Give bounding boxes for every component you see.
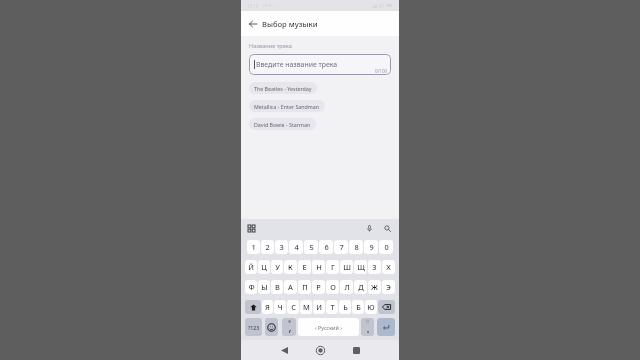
staticText: В xyxy=(275,282,280,292)
button[interactable]: Home xyxy=(312,342,329,359)
staticText: О xyxy=(330,282,336,292)
staticText: Э xyxy=(386,282,391,292)
button[interactable]: Э xyxy=(382,280,395,294)
button[interactable]: Я xyxy=(262,300,273,314)
button[interactable]: Recents xyxy=(348,342,365,359)
button[interactable]: Back xyxy=(276,342,293,359)
staticText: Р xyxy=(316,282,321,292)
staticText: 5 xyxy=(309,242,314,252)
staticText: Г xyxy=(331,262,335,272)
staticText: 0 xyxy=(384,242,389,252)
button[interactable]: 9 xyxy=(364,240,378,254)
button[interactable]: Щ xyxy=(354,260,367,274)
button[interactable]: Е xyxy=(298,260,311,274)
staticText: 3 xyxy=(279,242,284,252)
staticText: Ф xyxy=(248,282,255,292)
staticText: Ж xyxy=(371,282,378,292)
button[interactable]: Backspace xyxy=(378,300,395,314)
button[interactable]: Ш xyxy=(340,260,353,274)
staticText: 13:15 xyxy=(247,3,259,9)
staticText: Д xyxy=(358,282,364,292)
button[interactable]: 3 xyxy=(275,240,288,254)
button[interactable]: Л xyxy=(340,280,353,294)
button[interactable]: Shift xyxy=(245,300,261,314)
staticText: Ы xyxy=(261,282,268,292)
button[interactable]: Ц xyxy=(258,260,270,274)
button[interactable]: Р xyxy=(312,280,325,294)
button[interactable]: Enter xyxy=(377,318,395,336)
button[interactable]: Введите название трека xyxy=(249,54,391,75)
button[interactable]: Metallica - Enter Sandman xyxy=(249,100,325,112)
button[interactable]: 7 xyxy=(334,240,348,254)
button[interactable]: Search xyxy=(382,223,393,234)
staticText: Е xyxy=(302,262,307,272)
staticText: Название трека xyxy=(249,42,292,50)
button[interactable]: Ч xyxy=(274,300,286,314)
button[interactable]: Д xyxy=(354,280,367,294)
staticText: П xyxy=(302,282,308,292)
button[interactable]: Back xyxy=(244,15,261,32)
staticText: Х xyxy=(386,262,391,272)
button[interactable]: 4 xyxy=(289,240,303,254)
button[interactable]: 1 xyxy=(247,240,260,254)
staticText: Н xyxy=(316,262,322,272)
staticText: Щ xyxy=(357,262,365,272)
staticText: Ц xyxy=(261,262,267,272)
button[interactable]: З xyxy=(368,260,381,274)
button[interactable]: Ф xyxy=(245,280,257,294)
staticText: М xyxy=(303,302,310,312)
staticText: 9 xyxy=(369,242,374,252)
button[interactable]: М xyxy=(300,300,312,314)
button[interactable]: Comma xyxy=(282,318,296,336)
button[interactable]: А xyxy=(284,280,297,294)
button[interactable]: К xyxy=(284,260,297,274)
button[interactable]: В xyxy=(271,280,283,294)
staticText: ‹ Русский › xyxy=(315,324,342,331)
staticText: Ч xyxy=(277,302,283,312)
staticText: 0/100 xyxy=(375,68,388,74)
staticText: ?123 xyxy=(248,324,260,331)
button[interactable]: О xyxy=(326,280,339,294)
button[interactable]: Г xyxy=(326,260,339,274)
staticText: 2 xyxy=(265,242,270,252)
staticText: Т xyxy=(330,302,335,312)
button[interactable]: Б xyxy=(352,300,364,314)
button[interactable]: Ь xyxy=(339,300,351,314)
button[interactable]: 8 xyxy=(349,240,363,254)
staticText: Ь xyxy=(343,302,348,312)
button[interactable]: У xyxy=(271,260,283,274)
button[interactable]: The Beatles - Yesterday xyxy=(249,82,317,94)
staticText: Ю xyxy=(367,302,375,312)
button[interactable]: Н xyxy=(312,260,325,274)
button[interactable]: 6 xyxy=(319,240,333,254)
button[interactable]: Period xyxy=(361,318,374,336)
button[interactable]: Х xyxy=(382,260,395,274)
button[interactable]: И xyxy=(313,300,325,314)
button[interactable]: Emoji xyxy=(265,318,278,336)
button[interactable]: David Bowie - Starman xyxy=(249,118,316,130)
staticText: 7 xyxy=(339,242,344,252)
button[interactable]: 2 xyxy=(261,240,274,254)
button[interactable]: П xyxy=(298,280,311,294)
staticText: С xyxy=(291,302,296,312)
staticText: 6 xyxy=(324,242,329,252)
button[interactable]: Й xyxy=(245,260,257,274)
button[interactable]: Ю xyxy=(365,300,377,314)
button[interactable]: Keyboard layouts xyxy=(246,223,257,234)
button[interactable]: 5 xyxy=(304,240,318,254)
button[interactable]: Symbols xyxy=(245,318,262,336)
button[interactable]: 0 xyxy=(379,240,393,254)
staticText: The Beatles - Yesterday xyxy=(254,85,312,92)
staticText: 8 xyxy=(354,242,359,252)
button[interactable]: Voice input xyxy=(364,223,375,234)
button[interactable]: Т xyxy=(326,300,338,314)
button[interactable]: С xyxy=(287,300,299,314)
button[interactable]: Ы xyxy=(258,280,270,294)
staticText: И xyxy=(316,302,322,312)
staticText: 1 xyxy=(251,242,256,252)
button[interactable]: ‹ Русский › xyxy=(298,318,359,336)
button[interactable]: Ж xyxy=(368,280,381,294)
staticText: Я xyxy=(265,302,270,312)
staticText: У xyxy=(275,262,280,272)
